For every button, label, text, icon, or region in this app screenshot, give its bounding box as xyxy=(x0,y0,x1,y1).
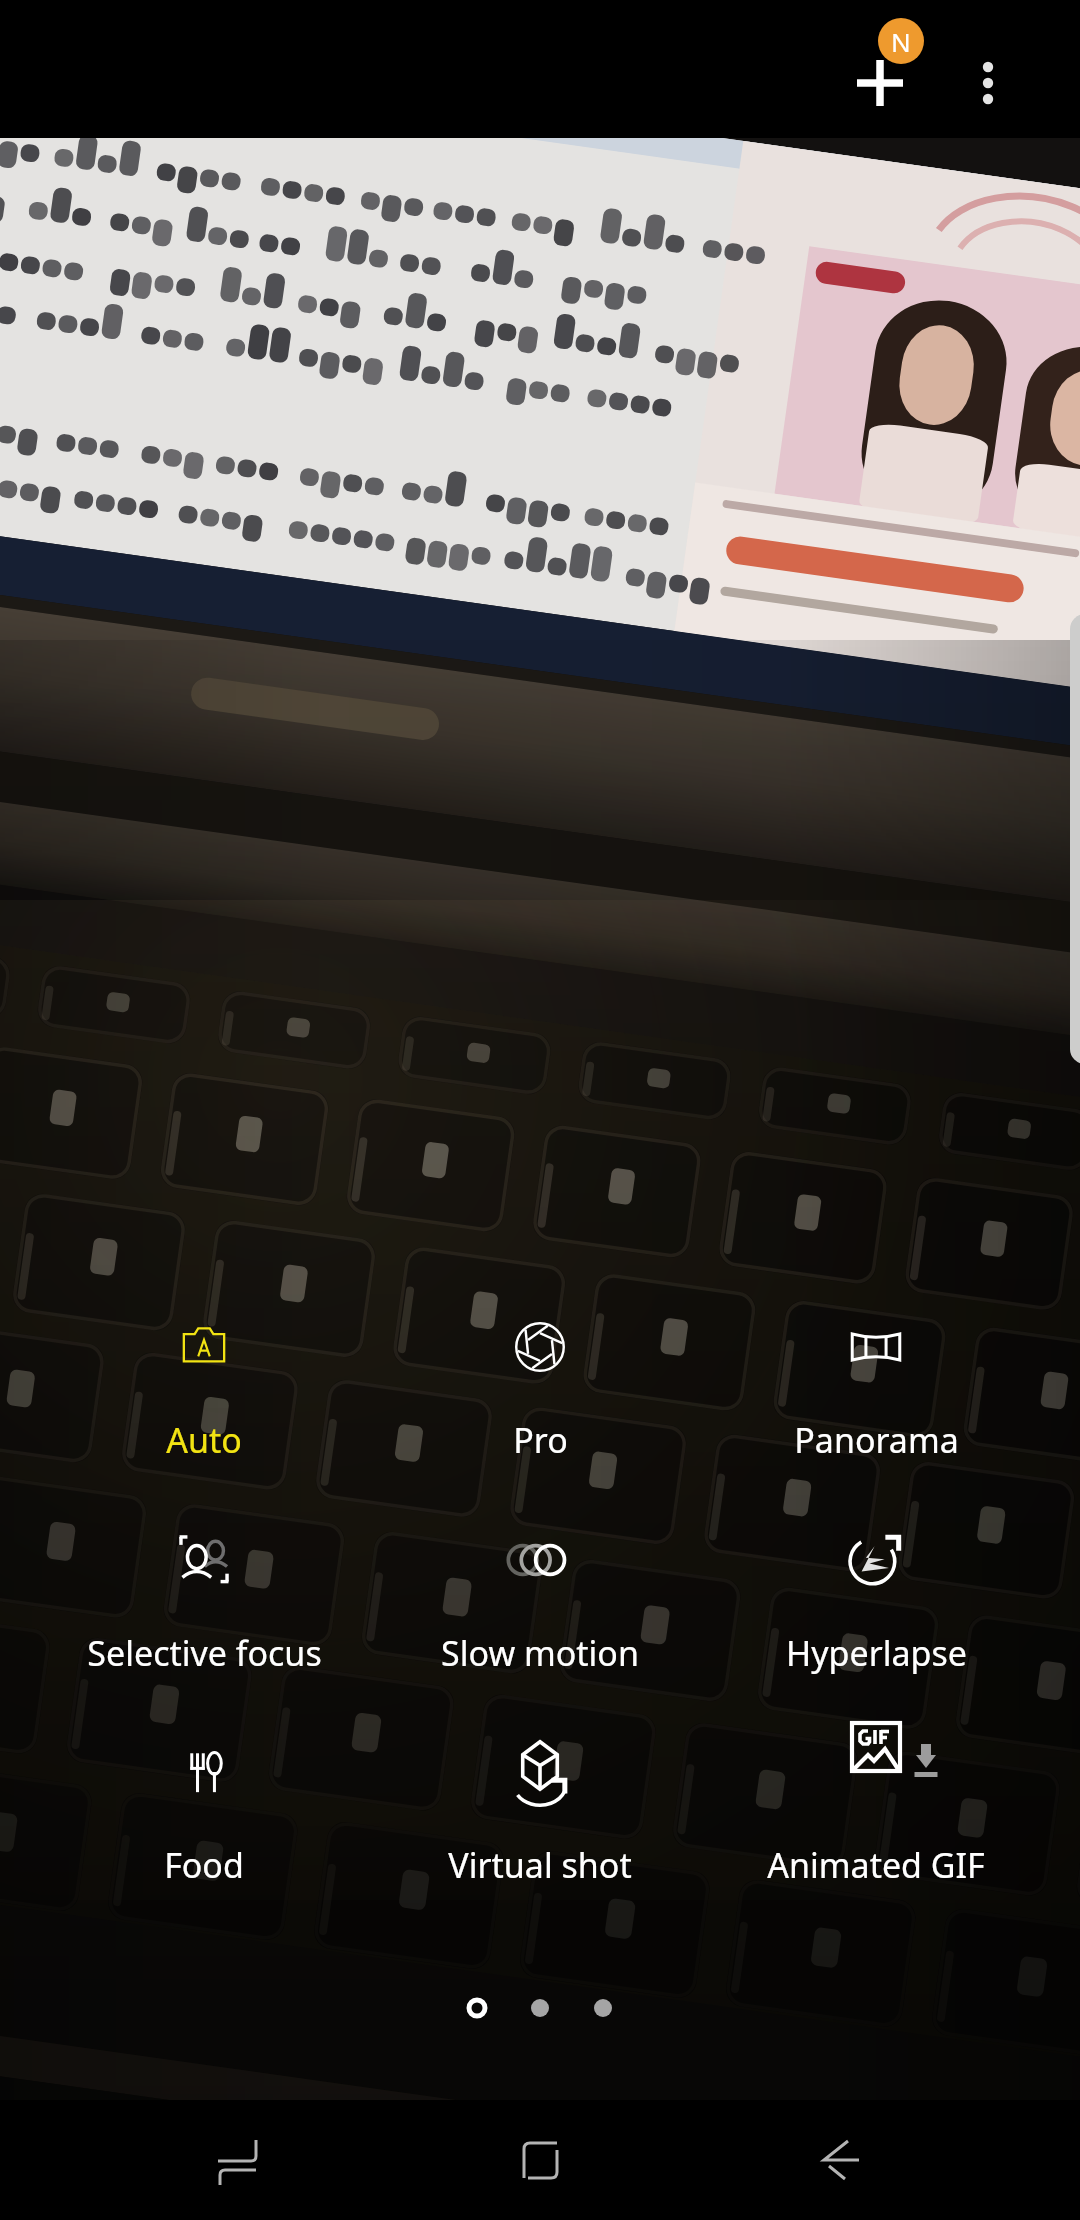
button[interactable]: Panorama xyxy=(708,1311,1044,1463)
button[interactable]: Hyperlapse xyxy=(708,1524,1044,1676)
button[interactable]: Recents xyxy=(189,2112,285,2208)
staticText: Auto xyxy=(166,1417,242,1463)
staticText: Virtual shot xyxy=(448,1842,632,1888)
staticText: Selective focus xyxy=(87,1630,322,1676)
button[interactable]: Back xyxy=(793,2112,889,2208)
staticText: Animated GIF xyxy=(767,1842,985,1888)
staticText: N xyxy=(891,24,911,59)
button[interactable]: Food xyxy=(36,1736,372,1888)
button[interactable]: More options xyxy=(938,33,1038,133)
button[interactable]: Home xyxy=(492,2112,588,2208)
button[interactable]: Virtual shot xyxy=(372,1736,708,1888)
staticText: Hyperlapse xyxy=(786,1630,967,1676)
staticText: Slow motion xyxy=(441,1630,639,1676)
button[interactable]: Animated GIF xyxy=(708,1736,1044,1888)
button[interactable]: Pro xyxy=(372,1311,708,1463)
button[interactable]: Slow motion xyxy=(372,1524,708,1676)
staticText: Food xyxy=(164,1842,244,1888)
staticText: Panorama xyxy=(794,1417,959,1463)
button[interactable]: Add camera mode xyxy=(824,27,936,139)
button[interactable]: Selective focus xyxy=(36,1524,372,1676)
staticText: Pro xyxy=(513,1417,568,1463)
button[interactable]: Auto xyxy=(36,1311,372,1463)
